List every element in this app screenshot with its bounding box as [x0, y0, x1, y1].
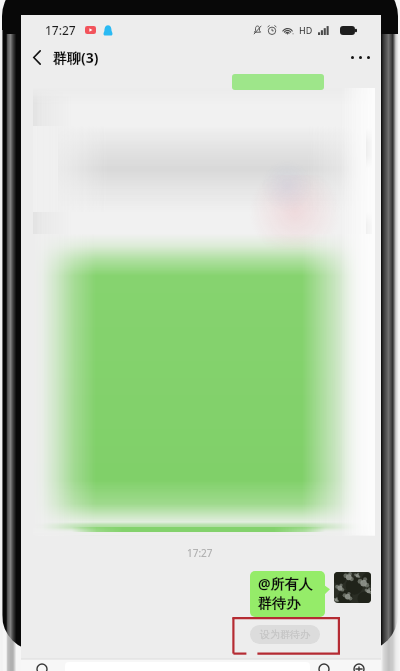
staticText: 群聊(3)	[53, 48, 99, 67]
staticText: HD	[299, 24, 313, 36]
button[interactable]	[232, 74, 324, 90]
button[interactable]: 设为群待办	[250, 625, 320, 644]
other: Back	[32, 50, 42, 65]
button[interactable]: More options	[340, 43, 381, 72]
button[interactable]: @所有人 群待办	[250, 571, 325, 617]
staticText: 17:27	[45, 22, 76, 38]
staticText: 17:27	[187, 546, 213, 560]
button[interactable]: Voice input	[33, 663, 51, 671]
button[interactable]: More	[350, 663, 368, 671]
button[interactable]: Avatar	[334, 572, 371, 603]
button[interactable]: Emoji	[315, 663, 333, 671]
staticText: @所有人 群待办	[258, 574, 313, 612]
button[interactable]: Back	[21, 43, 105, 72]
staticText: 设为群待办	[260, 628, 310, 641]
